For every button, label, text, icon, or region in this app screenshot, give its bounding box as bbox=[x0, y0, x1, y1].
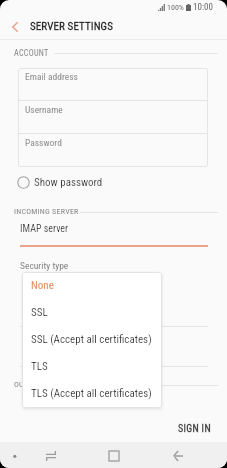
button[interactable]: TLS (Accept all certificates) bbox=[22, 380, 162, 407]
button[interactable]: None bbox=[22, 272, 162, 299]
staticText: INCOMING SERVER bbox=[14, 207, 79, 216]
staticText: 100% bbox=[167, 3, 184, 12]
button[interactable]: Navigate up bbox=[2, 14, 28, 40]
staticText: Show password bbox=[34, 176, 103, 189]
button[interactable]: TLS bbox=[22, 353, 162, 380]
button[interactable]: Show password bbox=[10, 170, 130, 194]
staticText: SSL bbox=[31, 306, 48, 319]
button[interactable]: SSL bbox=[22, 299, 162, 326]
staticText: ACCOUNT bbox=[14, 48, 49, 58]
staticText: Username bbox=[25, 104, 63, 115]
button[interactable]: Back bbox=[168, 446, 188, 466]
staticText: Security type bbox=[20, 260, 69, 271]
button[interactable]: Username bbox=[18, 101, 208, 133]
staticText: Email address bbox=[25, 71, 78, 82]
staticText: None bbox=[31, 279, 54, 292]
button[interactable]: SIGN IN bbox=[170, 418, 218, 440]
staticText: SIGN IN bbox=[178, 423, 211, 435]
button[interactable]: Password bbox=[18, 134, 208, 166]
staticText: IMAP server bbox=[20, 223, 69, 235]
staticText: TLS (Accept all certificates) bbox=[31, 387, 152, 400]
staticText: OUTGOING SERVER bbox=[14, 380, 80, 389]
staticText: TLS bbox=[31, 360, 48, 373]
button[interactable]: Email address bbox=[18, 68, 208, 100]
button[interactable]: Home bbox=[104, 446, 124, 466]
button[interactable]: Recent apps bbox=[41, 446, 61, 466]
staticText: SERVER SETTINGS bbox=[30, 20, 113, 33]
staticText: 10:00 bbox=[193, 2, 213, 13]
button[interactable]: SSL (Accept all certificates) bbox=[22, 326, 162, 353]
staticText: SSL (Accept all certificates) bbox=[31, 333, 152, 346]
staticText: Password bbox=[25, 137, 62, 148]
